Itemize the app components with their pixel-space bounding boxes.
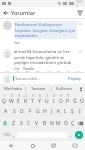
staticText: X [20,120,23,127]
staticText: Ğ [73,98,77,105]
staticText: O [59,98,63,105]
button[interactable]: Merhaba [0,84,25,93]
staticText: 9 [60,94,62,98]
staticText: W [9,98,14,105]
button[interactable]: 4 [22,93,29,105]
button[interactable]: D [18,105,26,117]
button[interactable]: 0 [64,93,71,105]
staticText: Harikasınız! Kutluyorum hepinizi. Sevgil… [15,22,76,38]
staticText: Z [12,120,15,127]
staticText: R [24,98,28,105]
button[interactable]: Z [9,117,17,129]
staticText: C [27,120,31,127]
staticText: I [79,108,81,115]
button[interactable]: Back [0,7,11,18]
staticText: D [20,108,24,115]
staticText: Ç [71,120,75,127]
staticText: Ş [71,108,74,115]
staticText: 2sa [14,66,20,71]
staticText: 14:52 [76,0,83,7]
staticText: A [4,108,8,115]
button[interactable]: Ö [62,117,69,129]
staticText: Kullanıcı [56,86,73,92]
staticText: E [17,98,20,105]
staticText: H [43,108,47,115]
button[interactable]: 6 [36,93,43,105]
button[interactable]: 5 [29,93,36,105]
staticText: 7 [46,94,48,98]
button[interactable]: Tamam [26,84,51,93]
button[interactable]: Hide keyboard [64,141,85,150]
staticText: P [66,98,70,105]
staticText: Yorumlar [11,9,36,16]
staticText: Merhaba [4,86,22,92]
button[interactable]: Ş [69,105,76,117]
staticText: I [53,98,55,105]
button[interactable]: 9 [57,93,64,105]
staticText: 3 [18,94,20,98]
button[interactable]: B [41,117,48,129]
staticText: 5 [32,94,34,98]
button[interactable]: C [25,117,33,129]
button[interactable]: J [48,105,55,117]
button[interactable]: Recents [43,141,64,150]
staticText: N [50,120,54,127]
button[interactable]: Ğ [71,93,78,105]
staticText: Yanıtla [23,66,34,71]
button[interactable]: 3 [15,93,22,105]
button[interactable]: 2 [8,93,15,105]
button[interactable]: Home [22,141,43,150]
button[interactable]: F [26,105,34,117]
staticText: Y [38,98,41,105]
staticText: K [57,108,61,115]
button[interactable]: G [34,105,41,117]
staticText: . [70,132,72,139]
staticText: ahmet94 Sonsuzlukta ve her yerde hayırlı… [14,49,77,65]
staticText: 4 [25,94,27,98]
staticText: F [29,108,32,115]
button[interactable]: 7 [43,93,50,105]
button[interactable]: Voice input [77,84,85,93]
button[interactable]: Send [75,131,83,139]
button[interactable]: N [48,117,55,129]
button[interactable]: I [76,105,83,117]
staticText: T [31,98,34,105]
button[interactable]: Ü [78,93,85,105]
button[interactable]: M [55,117,62,129]
button[interactable]: Paylaş [67,75,82,83]
button[interactable]: V [33,117,41,129]
button[interactable]: . [68,130,74,140]
staticText: J [51,108,53,115]
button[interactable]: 8 [50,93,57,105]
button[interactable]: K [55,105,62,117]
staticText: ?123 [3,133,10,137]
staticText: Ü [80,98,84,105]
staticText: L [64,108,67,115]
button[interactable]: ahmet94 Sonsuzlukta ve her yerde hayırlı… [0,47,85,71]
button[interactable]: Filter [74,7,85,18]
button[interactable]: L [62,105,69,117]
staticText: V [35,120,39,127]
button[interactable]: Backspace [76,117,85,129]
staticText: Q [2,98,6,105]
button[interactable]: S [10,105,18,117]
button[interactable]: H [41,105,48,117]
button[interactable]: A [2,105,10,117]
staticText: B [43,120,47,127]
staticText: 0 [67,94,69,98]
button[interactable]: 1 [0,93,8,105]
button[interactable]: Ç [69,117,76,129]
button[interactable]: Kullanıcı [52,84,77,93]
staticText: Yorum ekle... [15,76,67,82]
button[interactable]: Back [0,141,22,150]
staticText: Paylaş [68,76,81,82]
staticText: M [56,120,61,127]
button[interactable]: Shift [0,117,9,129]
staticText: 3sa [14,40,20,45]
button[interactable]: X [17,117,25,129]
button[interactable]: , [11,130,17,140]
button[interactable]: Numbers and symbols [1,130,11,140]
staticText: 2 [11,94,13,98]
staticText: 6 [39,94,41,98]
